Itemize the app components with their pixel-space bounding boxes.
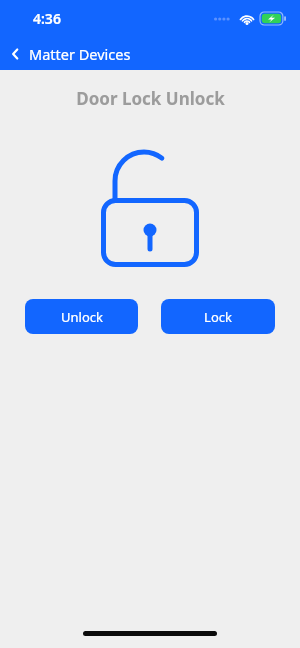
staticText: Lock <box>204 308 232 326</box>
other: Door unlocked <box>95 141 205 271</box>
button[interactable]: Back <box>0 38 137 70</box>
button[interactable]: Unlock <box>25 299 138 334</box>
staticText: Door Lock Unlock <box>76 87 225 110</box>
staticText: Unlock <box>61 308 103 326</box>
other: Back <box>8 46 24 62</box>
staticText: 4:36 <box>33 9 61 28</box>
button[interactable]: Lock <box>161 299 275 334</box>
staticText: Matter Devices <box>29 44 131 64</box>
